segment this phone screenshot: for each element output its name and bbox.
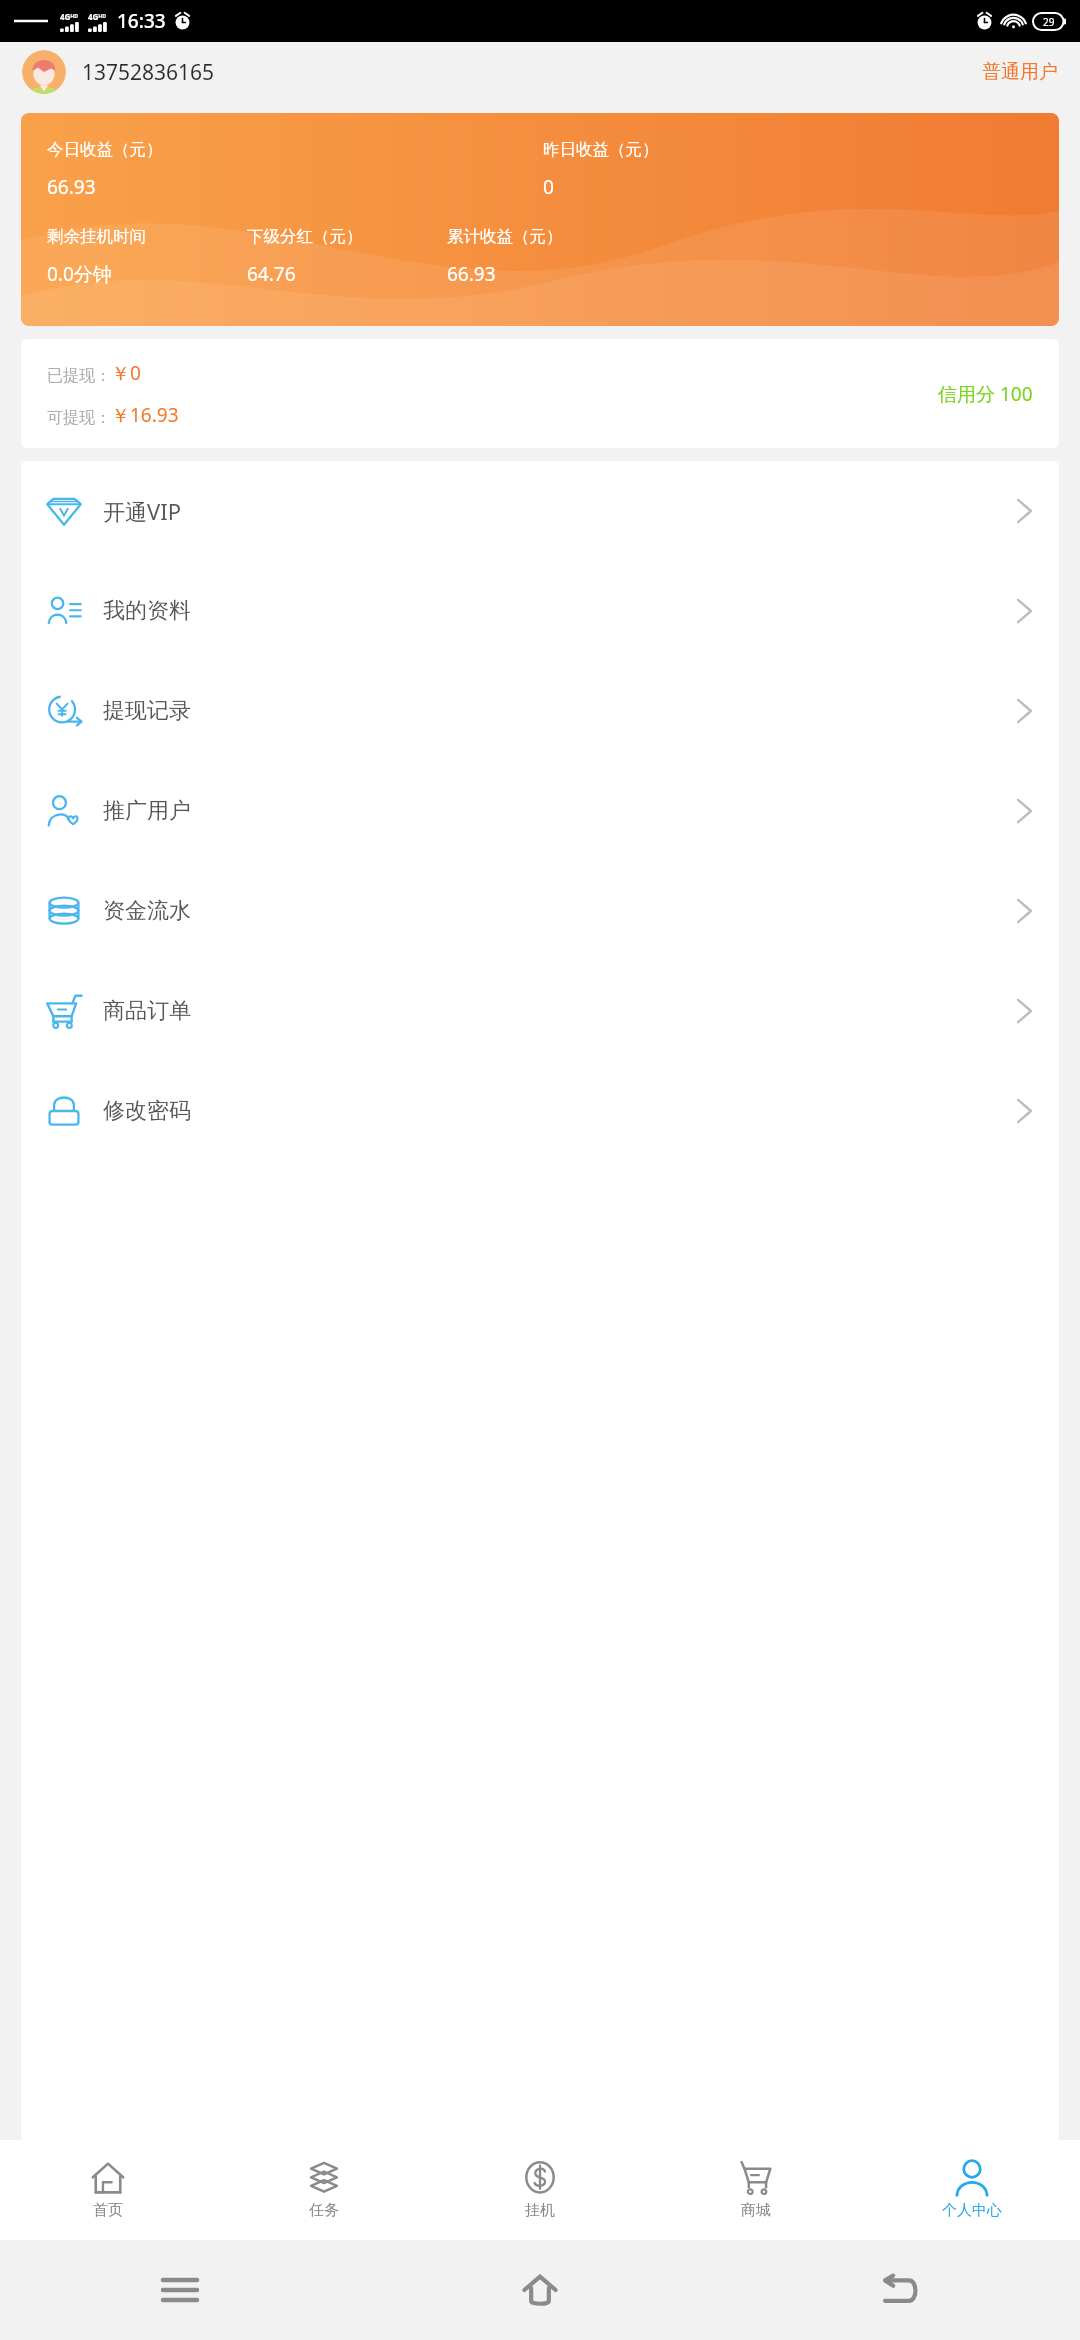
button[interactable]: Recents	[0, 2240, 360, 2340]
staticText: 任务	[309, 2201, 339, 2220]
staticText: 29	[1043, 15, 1055, 29]
staticText: 首页	[93, 2201, 123, 2220]
staticText: 可提现：	[47, 408, 111, 428]
staticText: 商城	[741, 2201, 771, 2220]
staticText: 16:33	[117, 8, 166, 34]
staticText: 提现记录	[103, 697, 191, 725]
staticText: 修改密码	[103, 1097, 191, 1125]
button[interactable]: 今日收益（元）	[21, 113, 1059, 326]
button[interactable]: 任务	[216, 2140, 432, 2240]
staticText: 我的资料	[103, 597, 191, 625]
button[interactable]: 挂机	[432, 2140, 648, 2240]
button[interactable]: 普通用户	[982, 60, 1058, 84]
button[interactable]: 首页	[0, 2140, 216, 2240]
staticText: 今日收益（元）	[47, 139, 163, 160]
button[interactable]: Avatar	[22, 50, 66, 94]
staticText: 64.76	[247, 261, 296, 287]
staticText: 已提现：	[47, 366, 111, 386]
staticText: 资金流水	[103, 897, 191, 925]
staticText: 普通用户	[982, 60, 1058, 84]
staticText: 商品订单	[103, 997, 191, 1025]
button[interactable]: Home	[360, 2240, 720, 2340]
staticText: 13752836165	[82, 58, 215, 87]
staticText: ￥16.93	[111, 402, 179, 428]
staticText: 66.93	[47, 174, 96, 200]
button[interactable]: 个人中心	[864, 2140, 1080, 2240]
staticText: 剩余挂机时间	[47, 226, 146, 247]
staticText: 下级分红（元）	[247, 226, 363, 247]
staticText: 0.0分钟	[47, 261, 112, 287]
staticText: 开通VIP	[103, 496, 181, 526]
staticText: 昨日收益（元）	[543, 139, 659, 160]
button[interactable]: 已提现：	[21, 339, 1059, 448]
staticText: 累计收益（元）	[447, 226, 563, 247]
staticText: 推广用户	[103, 797, 191, 825]
staticText: 0	[543, 174, 554, 200]
button[interactable]: 商品订单	[21, 961, 1059, 1061]
button[interactable]: 修改密码	[21, 1061, 1059, 1161]
button[interactable]: 商城	[648, 2140, 864, 2240]
staticText: 个人中心	[942, 2201, 1002, 2220]
button[interactable]: 推广用户	[21, 761, 1059, 861]
staticText: 4Gᴴᴰ	[88, 11, 107, 22]
staticText: 4Gᴴᴰ	[60, 11, 79, 22]
staticText: 信用分 100	[938, 381, 1033, 407]
button[interactable]: 提现记录	[21, 661, 1059, 761]
button[interactable]: 我的资料	[21, 561, 1059, 661]
button[interactable]: Back	[720, 2240, 1080, 2340]
button[interactable]: 资金流水	[21, 861, 1059, 961]
button[interactable]: 开通VIP	[21, 461, 1059, 561]
staticText: 挂机	[525, 2201, 555, 2220]
staticText: ￥0	[111, 360, 141, 386]
staticText: 66.93	[447, 261, 496, 287]
